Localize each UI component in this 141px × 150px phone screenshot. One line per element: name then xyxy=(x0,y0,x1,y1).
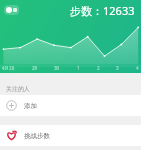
staticText: 添加 xyxy=(24,102,37,110)
button[interactable]: Challenge steps xyxy=(0,125,141,146)
button[interactable]: Add person xyxy=(0,95,141,116)
other: Challenge steps xyxy=(6,130,17,141)
staticText: 1 xyxy=(77,65,80,71)
staticText: 4 xyxy=(136,65,139,71)
staticText: 2 xyxy=(97,65,100,71)
staticText: 步数：12633 xyxy=(70,3,135,18)
staticText: 4月28 xyxy=(2,65,15,71)
staticText: 29 xyxy=(32,65,38,71)
button[interactable]: Profile badge xyxy=(6,7,17,13)
staticText: 关注的人 xyxy=(6,85,30,93)
staticText: 3 xyxy=(116,65,119,71)
staticText: 挑战步数 xyxy=(24,132,50,140)
other: Add person xyxy=(6,100,17,111)
staticText: 30 xyxy=(54,65,60,71)
